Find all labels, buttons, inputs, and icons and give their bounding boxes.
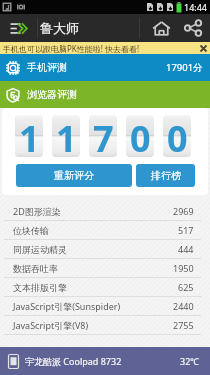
button[interactable]: 位块传输: [0, 221, 210, 239]
staticText: 2969: [173, 205, 194, 217]
staticText: 1: [19, 115, 40, 156]
button[interactable]: 重新评分: [16, 164, 132, 187]
staticText: 17901分: [166, 61, 203, 74]
button[interactable]: 浏览器评测: [0, 81, 210, 108]
staticText: 2D图形渲染: [13, 205, 61, 217]
staticText: 位块传输: [13, 225, 49, 236]
button[interactable]: 手机评测: [0, 54, 210, 81]
staticText: 排行榜: [151, 169, 181, 182]
staticText: JavaScript引擎(Sunspider): [13, 300, 121, 312]
staticText: 手机评测: [27, 61, 67, 74]
button[interactable]: 文本排版引擎: [0, 278, 210, 296]
staticText: 鲁大师: [40, 20, 79, 36]
button[interactable]: JavaScript引擎(Sunspider): [0, 297, 210, 315]
staticText: 宇龙酷派 Coolpad 8732: [25, 355, 122, 367]
button[interactable]: 2D图形渲染: [0, 202, 210, 220]
staticText: 0: [167, 115, 188, 156]
staticText: 重新评分: [54, 169, 94, 182]
staticText: 数据吞吐率: [13, 263, 58, 274]
staticText: 2440: [173, 300, 194, 312]
staticText: 浏览器评测: [27, 88, 77, 101]
button[interactable]: 手机也可以跟电脑PK性能啦! 快去看看!: [0, 42, 210, 54]
staticText: 0: [130, 115, 151, 156]
staticText: 手机也可以跟电脑PK性能啦! 快去看看!: [3, 43, 140, 54]
button[interactable]: Close: [196, 42, 210, 54]
button[interactable]: 排行榜: [136, 164, 195, 187]
staticText: 同屏运动精灵: [13, 244, 67, 255]
button[interactable]: Menu: [0, 14, 37, 42]
staticText: 1950: [173, 262, 194, 274]
staticText: 444: [178, 243, 194, 255]
staticText: 1: [56, 115, 77, 156]
staticText: 14:44: [184, 1, 208, 13]
staticText: JavaScript引擎(V8): [13, 319, 89, 331]
button[interactable]: 同屏运动精灵: [0, 240, 210, 258]
staticText: 2755: [173, 319, 194, 331]
staticText: 7: [93, 115, 114, 156]
staticText: 625: [178, 281, 194, 293]
staticText: 文本排版引擎: [13, 282, 67, 293]
button[interactable]: Share: [177, 14, 208, 42]
button[interactable]: 数据吞吐率: [0, 259, 210, 277]
button[interactable]: Home: [140, 14, 177, 42]
staticText: 517: [178, 224, 194, 236]
staticText: 32℃: [180, 355, 200, 367]
button[interactable]: JavaScript引擎(V8): [0, 316, 210, 334]
